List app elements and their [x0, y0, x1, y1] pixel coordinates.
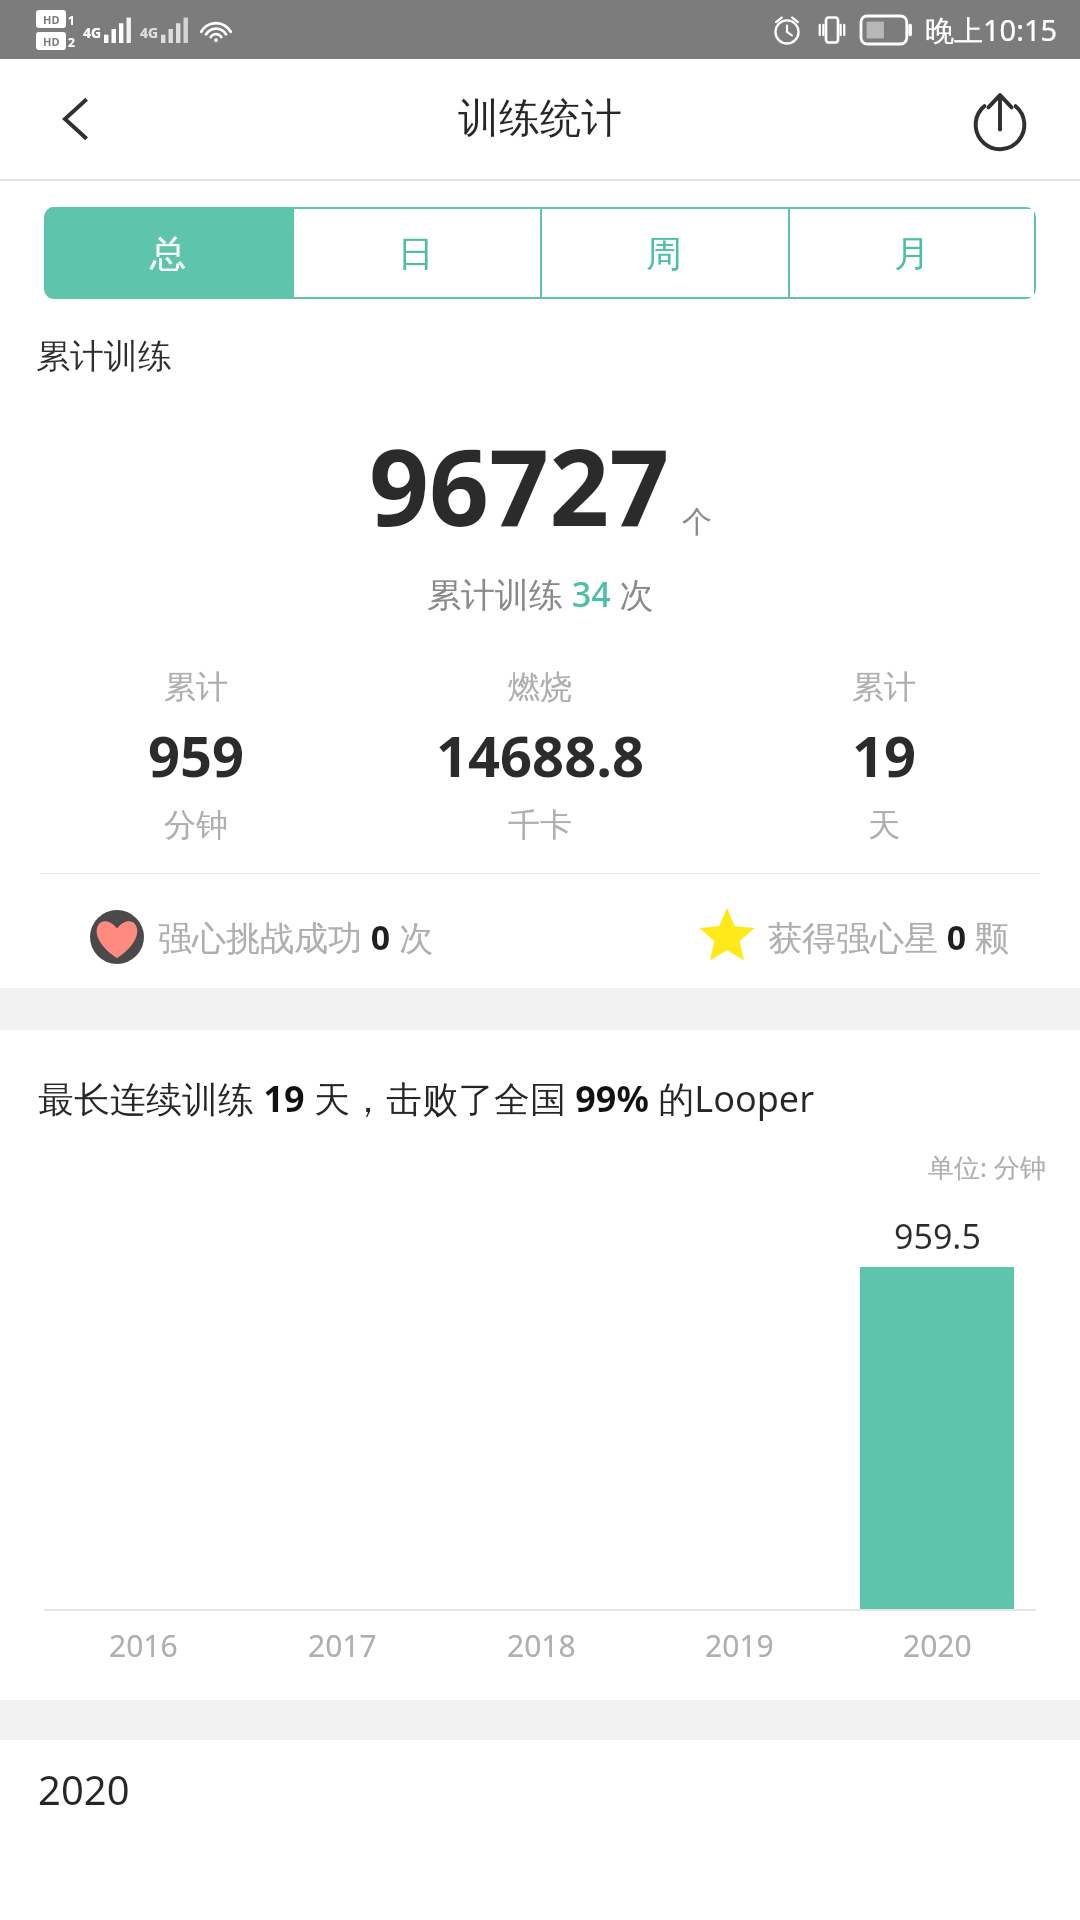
staticText: 单位: 分钟	[928, 1149, 1046, 1185]
staticText: 天	[868, 805, 900, 845]
staticText: 千卡	[508, 805, 572, 845]
staticText: 燃烧	[508, 667, 572, 707]
staticText: HD	[43, 34, 60, 49]
button[interactable]: Share	[958, 77, 1042, 161]
staticText: 96727	[369, 414, 670, 557]
staticText: 获得强心星 0 颗	[768, 914, 1010, 960]
staticText: HD	[43, 12, 60, 27]
staticText: 2017	[308, 1625, 377, 1666]
staticText: 19	[852, 717, 917, 793]
staticText: 2016	[109, 1625, 178, 1666]
staticText: 训练统计	[458, 93, 622, 145]
staticText: 强心挑战成功 0 次	[158, 914, 434, 960]
button[interactable]: 月	[788, 207, 1036, 299]
staticText: 2020	[38, 1762, 130, 1816]
staticText: 2	[68, 34, 75, 50]
staticText: 晚上10:15	[925, 10, 1058, 50]
staticText: 月	[894, 231, 930, 276]
staticText: 2020	[903, 1625, 972, 1666]
staticText: 日	[398, 231, 434, 276]
staticText: 个	[682, 503, 712, 541]
staticText: 周	[646, 231, 682, 276]
staticText: 最长连续训练 19 天，击败了全国 99% 的Looper	[38, 1074, 815, 1123]
staticText: 累计训练	[36, 335, 172, 378]
staticText: 959	[148, 717, 245, 793]
staticText: 分钟	[164, 805, 228, 845]
staticText: 2018	[507, 1625, 576, 1666]
staticText: 4G	[140, 23, 159, 42]
staticText: 总	[150, 231, 186, 276]
button[interactable]: 周	[540, 207, 788, 299]
staticText: 累计	[164, 667, 228, 707]
staticText: 2019	[705, 1625, 774, 1666]
button[interactable]: 日	[292, 207, 540, 299]
staticText: 14688.8	[436, 717, 644, 793]
staticText: 4G	[83, 23, 102, 42]
staticText: 959.5	[894, 1213, 981, 1259]
staticText: 累计	[852, 667, 916, 707]
staticText: 1	[68, 12, 75, 28]
button[interactable]: 总	[44, 207, 292, 299]
staticText: 累计训练 34 次	[427, 571, 654, 617]
button[interactable]: Back	[34, 77, 118, 161]
